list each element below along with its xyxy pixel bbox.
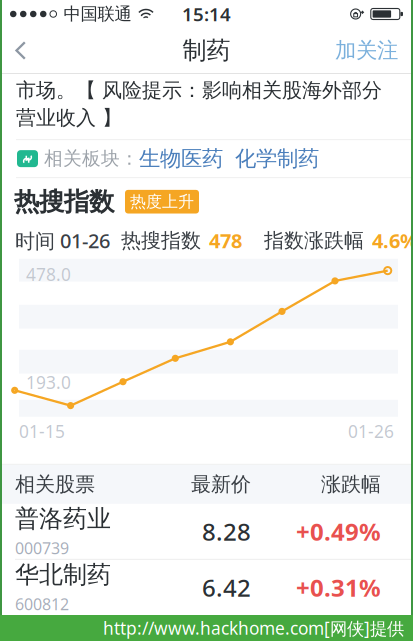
staticText: 加关注	[335, 37, 398, 64]
button[interactable]: 加关注	[322, 24, 411, 77]
button[interactable]: 普洛药业	[2, 504, 411, 559]
button[interactable]: 华北制药	[2, 560, 411, 615]
staticText: 制药	[182, 36, 230, 65]
staticText: 营业收入 】	[16, 106, 122, 130]
staticText: 6.42	[202, 571, 251, 603]
button[interactable]: 化学制药	[223, 145, 319, 172]
staticText: 8.28	[202, 515, 251, 547]
staticText: 普洛药业	[15, 504, 111, 533]
staticText: 涨跌幅	[321, 472, 381, 497]
staticText: 生物医药	[139, 145, 223, 172]
staticText: 中国联通	[63, 3, 131, 25]
staticText: 478	[209, 227, 242, 254]
staticText: 4.6%	[372, 227, 413, 254]
button[interactable]: Back	[2, 28, 44, 73]
staticText: 478.0	[26, 263, 71, 286]
staticText: +0.31%	[296, 571, 381, 603]
staticText: 热搜指数	[14, 186, 114, 217]
staticText: 01-26	[348, 420, 394, 443]
staticText: 华北制药	[15, 560, 111, 589]
staticText: 指数涨跌幅	[264, 228, 364, 253]
staticText: 市场。【 风险提示：影响相关股海外部分	[16, 78, 382, 103]
staticText: 最新价	[191, 472, 251, 497]
staticText: 01-15	[19, 420, 65, 443]
staticText: 600812	[15, 593, 69, 615]
staticText: 15:14	[182, 2, 231, 26]
button[interactable]: 生物医药	[139, 145, 223, 172]
staticText: 193.0	[26, 371, 71, 394]
staticText: 热搜指数	[121, 228, 201, 253]
staticText: +0.49%	[296, 515, 381, 547]
staticText: 化学制药	[235, 145, 319, 172]
staticText: 相关板块：	[44, 147, 139, 170]
staticText: http://www.hackhome.com[网侠]提供	[103, 616, 404, 639]
staticText: 相关股票	[15, 472, 95, 497]
staticText: 000739	[15, 537, 69, 559]
staticText: 热度上升	[130, 192, 194, 212]
staticText: 时间 01-26	[15, 227, 110, 254]
